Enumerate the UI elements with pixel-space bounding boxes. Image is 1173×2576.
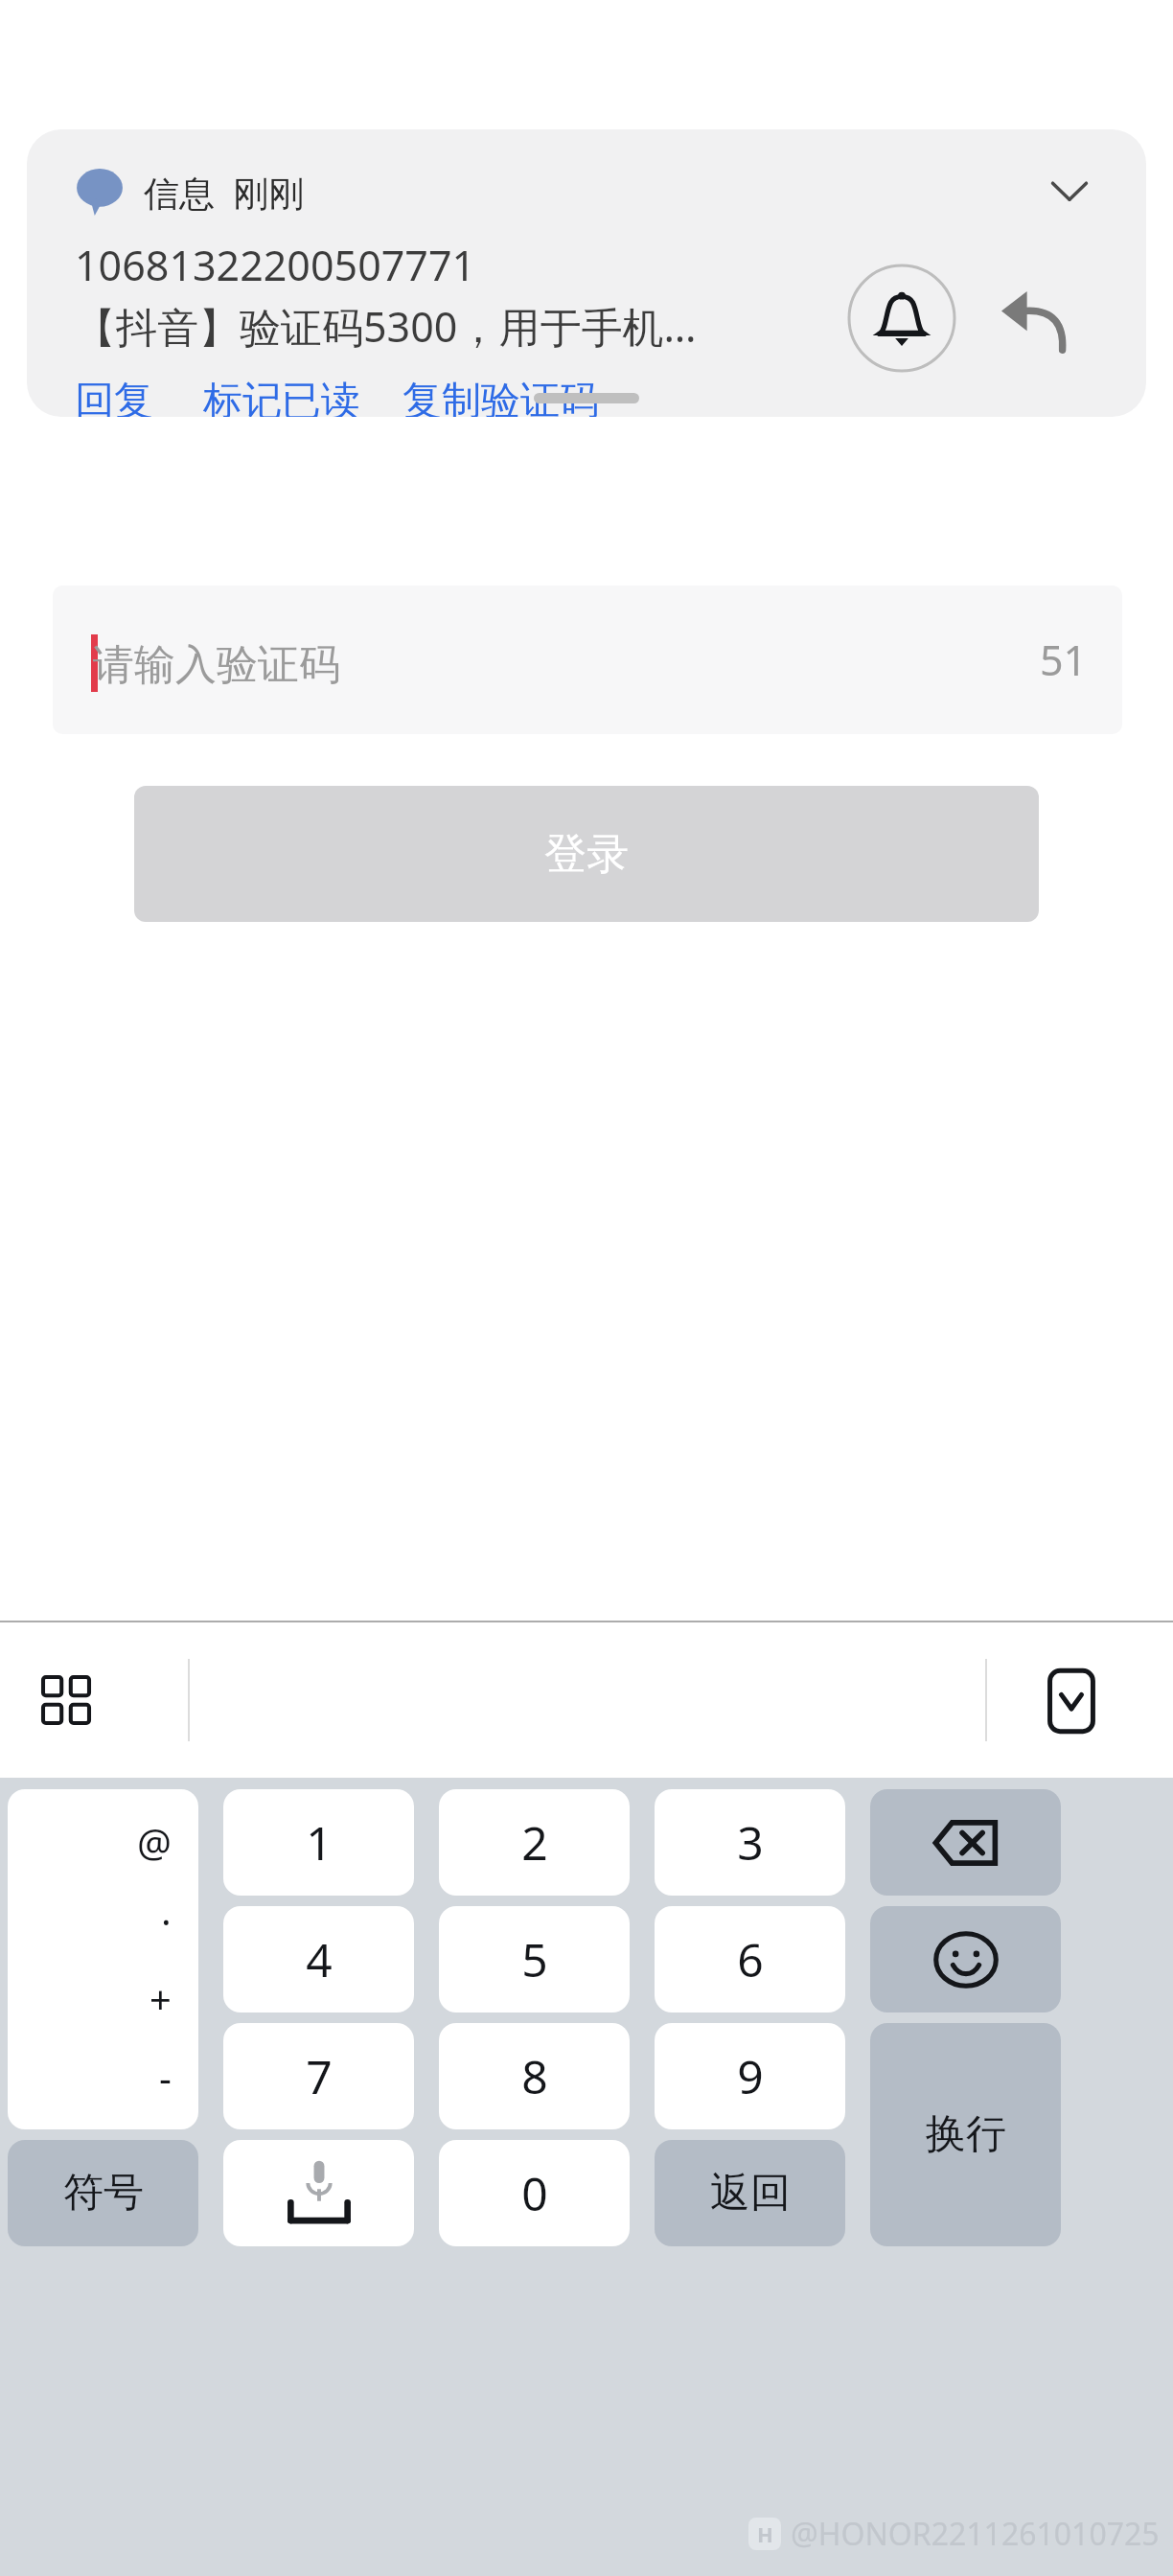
staticText: 0	[521, 2162, 548, 2224]
button[interactable]: Notification settings	[847, 264, 956, 373]
button[interactable]: 4	[223, 1906, 414, 2012]
staticText: ·	[161, 1895, 172, 1946]
staticText: 换行	[926, 2109, 1006, 2160]
staticText: 9	[737, 2045, 764, 2107]
button[interactable]: 返回	[655, 2140, 845, 2246]
button[interactable]: 2	[439, 1789, 630, 1896]
button[interactable]: 回复	[75, 377, 153, 417]
button[interactable]: Reply	[985, 269, 1083, 367]
button[interactable]: Backspace	[870, 1789, 1061, 1896]
staticText: 10681322200507771	[75, 237, 476, 293]
staticText: 请输入验证码	[93, 639, 340, 691]
button[interactable]: 信息 刚刚	[27, 129, 1146, 417]
button[interactable]: 1	[223, 1789, 414, 1896]
button[interactable]: Emoji	[870, 1906, 1061, 2012]
staticText: @	[137, 1816, 172, 1868]
staticText: 符号	[63, 2168, 144, 2219]
button[interactable]: 3	[655, 1789, 845, 1896]
button[interactable]: 请输入验证码	[53, 586, 1122, 734]
staticText: 信息 刚刚	[144, 168, 305, 217]
staticText: 8	[521, 2045, 548, 2107]
button[interactable]: Collapse	[1033, 154, 1106, 227]
button[interactable]: 标记已读	[203, 377, 360, 417]
staticText: H	[757, 2519, 773, 2548]
button[interactable]: Space, voice input	[223, 2140, 414, 2246]
staticText: +	[149, 1972, 172, 2024]
staticText: 返回	[710, 2168, 791, 2219]
button[interactable]: 0	[439, 2140, 630, 2246]
staticText: -	[159, 2051, 172, 2103]
staticText: 4	[306, 1928, 333, 1990]
button[interactable]: 6	[655, 1906, 845, 2012]
button[interactable]: Symbols at plus minus	[8, 1789, 198, 2129]
staticText: 回复	[75, 377, 153, 417]
staticText: 2	[521, 1811, 548, 1874]
button[interactable]: 登录	[134, 786, 1039, 922]
staticText: 7	[306, 2045, 333, 2107]
staticText: 5	[521, 1928, 548, 1990]
staticText: @HONOR2211261010725	[791, 2513, 1160, 2555]
staticText: 6	[737, 1928, 764, 1990]
button[interactable]: 8	[439, 2023, 630, 2129]
button[interactable]: 换行	[870, 2023, 1061, 2246]
button[interactable]: 5	[439, 1906, 630, 2012]
button[interactable]: 7	[223, 2023, 414, 2129]
staticText: 51	[1040, 632, 1088, 688]
button[interactable]: Hide keyboard	[1031, 1661, 1112, 1741]
staticText: 复制验证码	[402, 377, 599, 417]
staticText: 登录	[544, 828, 629, 881]
staticText: 1	[306, 1811, 333, 1874]
button[interactable]: 符号	[8, 2140, 198, 2246]
staticText: 【抖音】验证码5300，用于手机…	[75, 298, 697, 355]
staticText: 标记已读	[203, 377, 360, 417]
button[interactable]: 9	[655, 2023, 845, 2129]
button[interactable]: 复制验证码	[402, 377, 599, 417]
button[interactable]: Keyboard layouts	[27, 1661, 105, 1739]
staticText: 3	[737, 1811, 764, 1874]
